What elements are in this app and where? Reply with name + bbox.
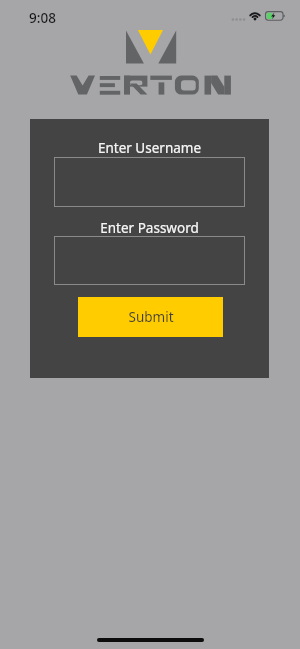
staticText: Enter Username xyxy=(30,139,269,157)
button[interactable]: Submit xyxy=(78,297,223,337)
staticText: 9:08 xyxy=(29,9,56,27)
button[interactable]: Password field xyxy=(54,236,245,285)
staticText: Submit xyxy=(128,308,174,326)
staticText: Enter Password xyxy=(30,219,269,237)
button[interactable]: Username field xyxy=(54,157,245,207)
